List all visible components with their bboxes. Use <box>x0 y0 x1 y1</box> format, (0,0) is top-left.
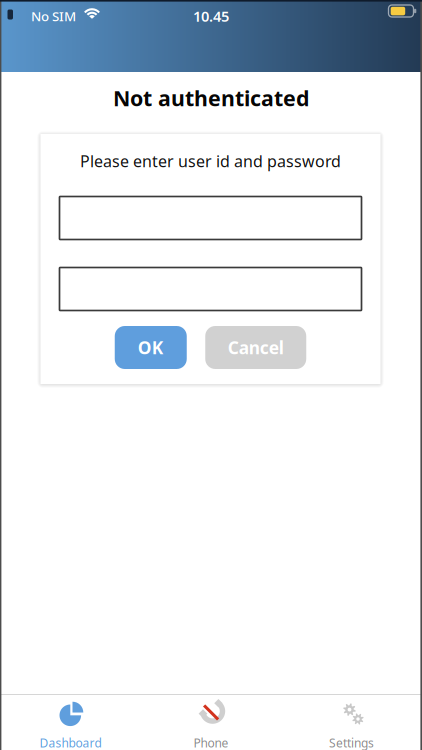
staticText: No SIM <box>31 7 76 25</box>
staticText: Please enter user id and password <box>80 150 341 172</box>
button[interactable]: OK <box>115 326 187 369</box>
staticText: Phone <box>193 735 228 750</box>
staticText: Not authenticated <box>113 84 309 112</box>
staticText: OK <box>138 336 164 359</box>
button[interactable]: Settings <box>281 695 422 750</box>
staticText: Cancel <box>228 336 284 359</box>
staticText: Dashboard <box>39 735 101 750</box>
button[interactable]: Phone <box>141 695 281 750</box>
button[interactable]: Cancel <box>205 326 306 369</box>
staticText: Settings <box>329 735 374 750</box>
button[interactable]: Dashboard <box>0 695 141 750</box>
staticText: 10.45 <box>193 6 229 26</box>
